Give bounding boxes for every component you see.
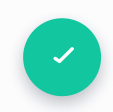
button[interactable]: Success [23, 18, 101, 96]
